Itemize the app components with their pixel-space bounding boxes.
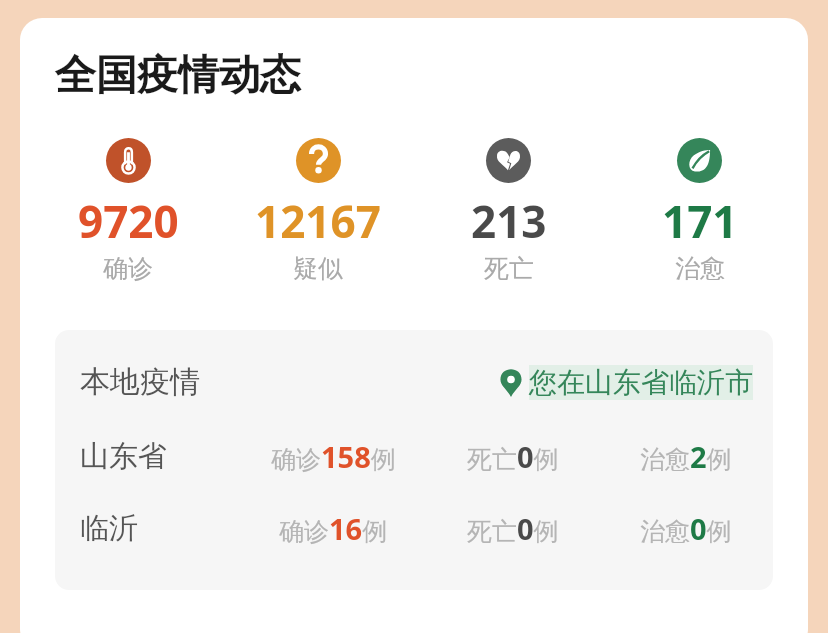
staticText: 您在山东省临沂市: [529, 365, 753, 400]
button[interactable]: 临沂: [55, 502, 773, 554]
staticText: 12167: [255, 191, 381, 251]
other: Location: [500, 369, 522, 397]
staticText: 疑似: [293, 253, 343, 284]
other: 疑似: [296, 138, 341, 183]
other: 死亡: [486, 138, 531, 183]
staticText: 171: [662, 191, 738, 251]
staticText: 治愈0例: [640, 509, 732, 548]
button[interactable]: 山东省: [55, 430, 773, 482]
button[interactable]: 确诊: [33, 136, 223, 286]
staticText: 确诊: [103, 253, 153, 284]
button[interactable]: 死亡: [413, 136, 604, 286]
staticText: 治愈: [675, 253, 725, 284]
staticText: 全国疫情动态: [55, 50, 301, 102]
staticText: 确诊16例: [279, 509, 388, 548]
other: 治愈: [677, 138, 722, 183]
staticText: 9720: [78, 191, 179, 251]
staticText: 213: [471, 191, 547, 251]
staticText: 本地疫情: [80, 363, 200, 401]
staticText: 确诊158例: [271, 437, 396, 476]
staticText: 死亡: [484, 253, 534, 284]
button[interactable]: 疑似: [223, 136, 413, 286]
staticText: 治愈2例: [640, 437, 732, 476]
other: 确诊: [106, 138, 151, 183]
button[interactable]: Location: [498, 365, 755, 400]
button[interactable]: 治愈: [604, 136, 795, 286]
staticText: 临沂: [80, 510, 138, 547]
staticText: 死亡0例: [467, 509, 559, 548]
staticText: 死亡0例: [467, 437, 559, 476]
staticText: 山东省: [80, 438, 167, 475]
